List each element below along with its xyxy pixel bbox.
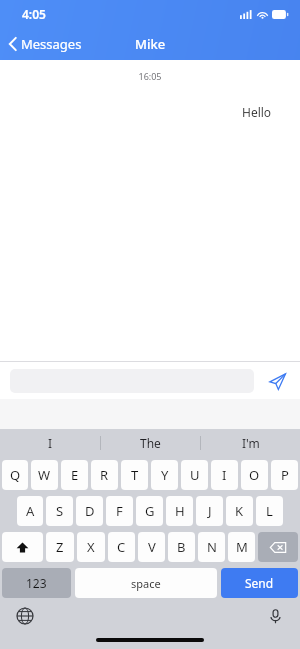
staticText: O [249,466,260,484]
button[interactable]: O [241,460,268,490]
button[interactable]: J [196,496,223,526]
staticText: I [222,466,227,484]
staticText: Messages [21,35,82,53]
button[interactable]: R [91,460,118,490]
staticText: 16:05 [0,70,300,82]
button[interactable]: 123 [2,568,71,598]
staticText: K [235,502,244,520]
button[interactable]: Dictate [262,603,288,629]
button[interactable]: W [31,460,58,490]
button[interactable]: I'm [201,429,300,457]
button[interactable]: Send message [264,368,290,394]
staticText: 123 [26,575,47,591]
button[interactable]: I [0,429,100,457]
staticText: M [236,538,248,556]
button[interactable]: A [17,496,43,526]
button[interactable]: S [46,496,73,526]
button[interactable]: Q [2,460,28,490]
button[interactable]: N [198,532,225,562]
button[interactable]: X [77,532,105,562]
button[interactable]: G [136,496,163,526]
button[interactable]: Send [221,568,298,598]
button[interactable]: The [101,429,200,457]
staticText: Q [10,466,21,484]
staticText: F [116,502,123,520]
staticText: Mike [135,35,166,53]
staticText: A [26,502,35,520]
button[interactable]: B [168,532,195,562]
staticText: R [100,466,109,484]
staticText: W [38,466,51,484]
button[interactable]: T [121,460,148,490]
button[interactable]: P [271,460,298,490]
staticText: D [85,502,95,520]
staticText: C [117,538,126,556]
button[interactable]: V [138,532,165,562]
staticText: N [207,538,217,556]
button[interactable]: space [75,568,217,598]
button[interactable]: K [226,496,253,526]
button[interactable]: U [181,460,208,490]
button[interactable]: E [61,460,88,490]
button[interactable]: Messages [0,31,90,57]
staticText: E [71,466,79,484]
staticText: T [131,466,139,484]
staticText: X [87,538,95,556]
button[interactable]: C [108,532,135,562]
staticText: Y [161,466,169,484]
button[interactable]: M [228,532,255,562]
button[interactable]: H [166,496,193,526]
staticText: L [266,502,273,520]
button[interactable]: Change keyboard language [12,603,38,629]
staticText: U [190,466,200,484]
staticText: 4:05 [22,6,46,22]
staticText: Hello [242,104,272,120]
staticText: Send [245,575,274,591]
staticText: H [175,502,185,520]
staticText: G [145,502,155,520]
staticText: I'm [242,435,260,451]
button[interactable]: D [76,496,103,526]
button[interactable]: I [211,460,238,490]
staticText: B [177,538,186,556]
staticText: Z [56,538,64,556]
button[interactable]: L [256,496,283,526]
button[interactable]: Y [151,460,178,490]
staticText: space [131,576,161,591]
button[interactable]: Shift [2,532,43,562]
staticText: The [140,435,161,451]
staticText: I [48,435,53,451]
staticText: J [208,502,212,520]
button[interactable]: Hello [231,95,283,129]
staticText: P [281,466,289,484]
staticText: V [148,538,156,556]
staticText: S [56,502,64,520]
button[interactable]: Backspace [258,532,298,562]
button[interactable]: Z [46,532,74,562]
button[interactable]: F [106,496,133,526]
